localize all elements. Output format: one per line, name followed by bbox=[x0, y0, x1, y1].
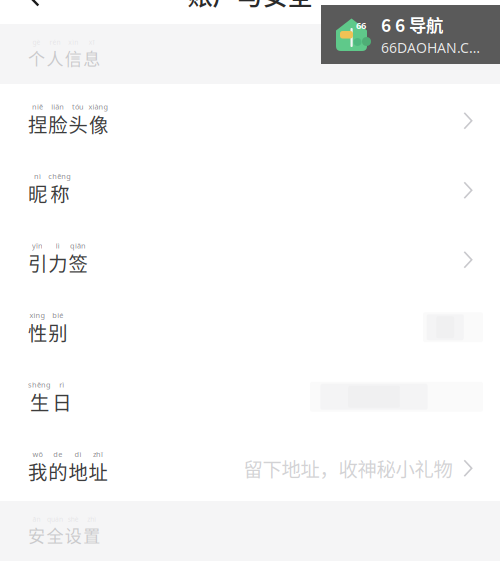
staticText: yǐn bbox=[32, 241, 43, 251]
button[interactable]: nì bbox=[0, 153, 500, 223]
staticText: zhì bbox=[87, 515, 96, 524]
staticText: 地 bbox=[68, 457, 87, 485]
staticText: niē bbox=[32, 102, 43, 112]
button[interactable]: yǐn bbox=[0, 223, 500, 292]
staticText: 66DAOHAN.COM bbox=[381, 38, 487, 57]
staticText: 址 bbox=[89, 457, 108, 485]
staticText: ān bbox=[32, 515, 40, 524]
staticText: 力 bbox=[48, 249, 67, 277]
staticText: 捏 bbox=[28, 110, 47, 138]
staticText: 性 bbox=[28, 318, 47, 346]
staticText: qiān bbox=[70, 241, 86, 251]
button[interactable]: shēng bbox=[0, 362, 500, 431]
staticText: xìn bbox=[68, 38, 78, 47]
staticText: gè bbox=[32, 38, 40, 47]
staticText: shēng bbox=[28, 380, 51, 390]
staticText: bié bbox=[52, 310, 63, 320]
staticText: 全 bbox=[46, 523, 63, 547]
staticText: de bbox=[53, 449, 62, 459]
staticText: 66 bbox=[356, 19, 366, 32]
staticText: 头 bbox=[68, 110, 87, 138]
staticText: 人 bbox=[46, 46, 63, 70]
staticText: 安 bbox=[28, 523, 45, 547]
button[interactable]: xìng bbox=[0, 292, 500, 362]
staticText: chēng bbox=[48, 171, 71, 181]
staticText: xìng bbox=[29, 310, 45, 320]
staticText: rén bbox=[49, 38, 60, 47]
staticText: 日 bbox=[52, 388, 71, 416]
staticText: 像 bbox=[89, 110, 108, 138]
button[interactable]: Back bbox=[0, 0, 49, 12]
staticText: 生 bbox=[30, 388, 49, 416]
staticText: rì bbox=[59, 380, 64, 390]
staticText: 6 6 导航 bbox=[381, 12, 443, 37]
staticText: nì bbox=[34, 171, 41, 181]
staticText: 我 bbox=[28, 457, 47, 485]
staticText: 留下地址，收神秘小礼物 bbox=[243, 454, 452, 482]
staticText: 昵 bbox=[28, 179, 47, 207]
button[interactable]: niē bbox=[0, 84, 500, 153]
staticText: lì bbox=[56, 241, 60, 251]
staticText: 脸 bbox=[48, 110, 67, 138]
staticText: 别 bbox=[48, 318, 67, 346]
staticText: 账户与安全 bbox=[187, 0, 312, 12]
staticText: zhǐ bbox=[93, 449, 103, 459]
staticText: xiàng bbox=[89, 102, 109, 112]
staticText: shè bbox=[68, 515, 79, 524]
staticText: tóu bbox=[72, 102, 84, 112]
staticText: dì bbox=[74, 449, 81, 459]
staticText: 引 bbox=[28, 249, 47, 277]
staticText: 签 bbox=[68, 249, 87, 277]
staticText: wǒ bbox=[32, 449, 42, 459]
staticText: 个 bbox=[28, 46, 45, 70]
staticText: 息 bbox=[83, 46, 100, 70]
staticText: 称 bbox=[50, 179, 69, 207]
staticText: xī bbox=[89, 38, 95, 47]
staticText: liǎn bbox=[51, 102, 64, 112]
staticText: 置 bbox=[83, 523, 100, 547]
staticText: 设 bbox=[65, 523, 82, 547]
button[interactable]: wǒ bbox=[0, 431, 500, 501]
staticText: 的 bbox=[48, 457, 67, 485]
staticText: quán bbox=[47, 515, 63, 524]
staticText: 信 bbox=[65, 46, 82, 70]
